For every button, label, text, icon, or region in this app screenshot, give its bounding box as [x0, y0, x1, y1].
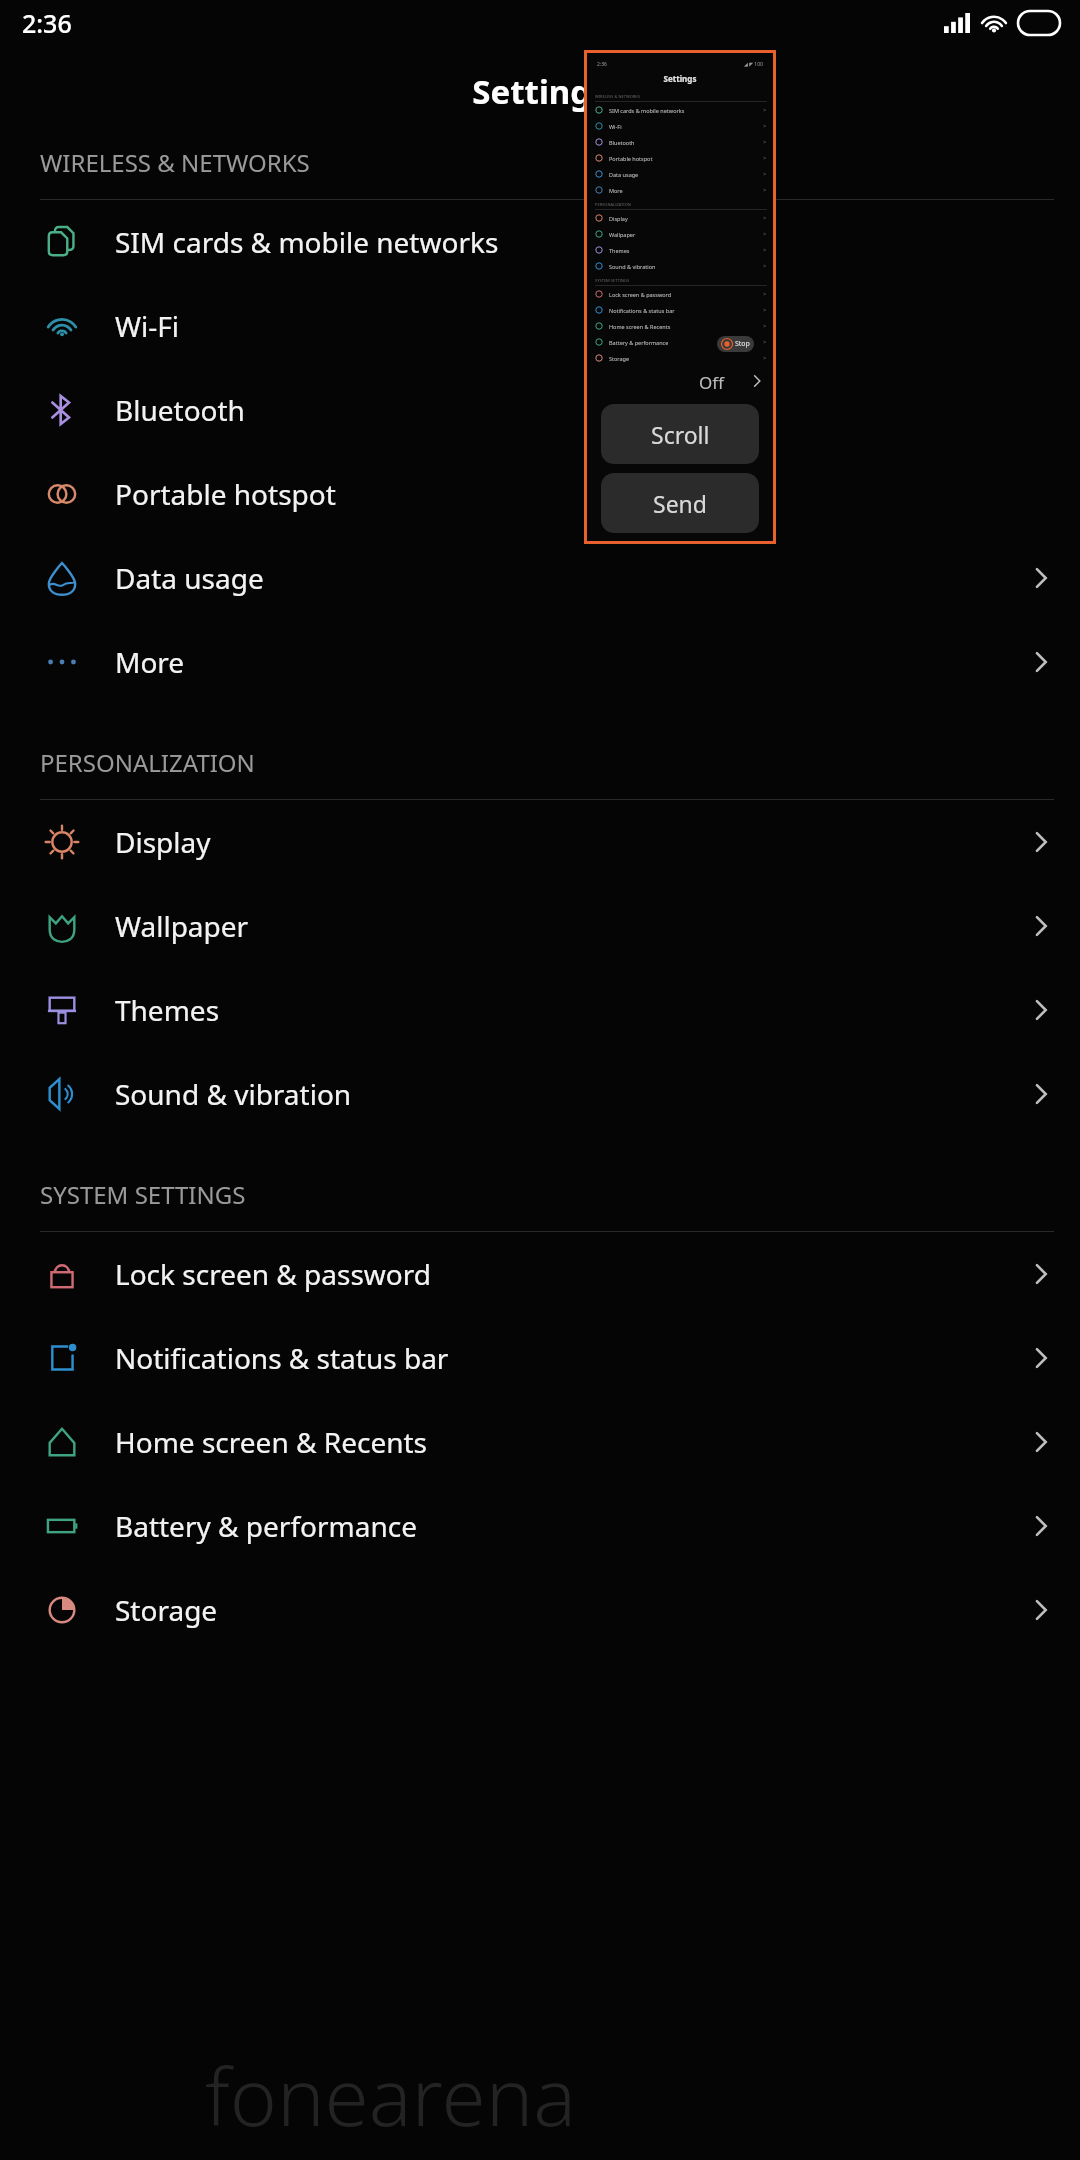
- button[interactable]: Themes: [587, 242, 773, 258]
- staticText: >: [763, 322, 767, 330]
- staticText: >: [763, 262, 767, 270]
- staticText: >: [763, 214, 767, 222]
- staticText: Themes: [115, 991, 220, 1029]
- staticText: Wi-Fi: [609, 123, 622, 130]
- button[interactable]: Battery & performance: [587, 334, 773, 350]
- staticText: Sound & vibration: [609, 263, 656, 270]
- staticText: Notifications & status bar: [115, 1339, 449, 1377]
- staticText: Display: [115, 823, 211, 861]
- staticText: Wallpaper: [115, 907, 249, 945]
- button[interactable]: Wallpaper: [0, 884, 1080, 968]
- button[interactable]: Sound & vibration: [587, 258, 773, 274]
- staticText: SYSTEM SETTINGS: [595, 278, 630, 283]
- button[interactable]: Storage: [587, 350, 773, 366]
- staticText: Wi-Fi: [115, 307, 180, 345]
- staticText: >: [763, 186, 767, 194]
- button[interactable]: More: [587, 182, 773, 198]
- staticText: Display: [609, 215, 628, 222]
- button[interactable]: Home screen & Recents: [0, 1400, 1080, 1484]
- button[interactable]: Storage: [0, 1568, 1080, 1652]
- staticText: >: [763, 246, 767, 254]
- staticText: PERSONALIZATION: [595, 202, 631, 207]
- staticText: Battery & performance: [115, 1507, 417, 1545]
- staticText: fonearena: [205, 2040, 577, 2149]
- button[interactable]: Sound & vibration: [0, 1052, 1080, 1136]
- button[interactable]: Wi-Fi: [0, 284, 1080, 368]
- button[interactable]: Portable hotspot: [0, 452, 1080, 536]
- button[interactable]: Notifications & status bar: [0, 1316, 1080, 1400]
- staticText: >: [763, 338, 767, 346]
- button[interactable]: More: [0, 620, 1080, 704]
- button[interactable]: Display: [0, 800, 1080, 884]
- button[interactable]: Scroll: [601, 404, 759, 464]
- staticText: >: [763, 230, 767, 238]
- staticText: Settings: [587, 73, 773, 84]
- button[interactable]: Data usage: [0, 536, 1080, 620]
- staticText: Storage: [609, 355, 630, 362]
- staticText: Storage: [115, 1591, 218, 1629]
- button[interactable]: Data usage: [587, 166, 773, 182]
- staticText: Notifications & status bar: [609, 307, 675, 314]
- staticText: Lock screen & password: [609, 291, 672, 298]
- button[interactable]: Lock screen & password: [587, 286, 773, 302]
- staticText: Sound & vibration: [115, 1075, 352, 1113]
- button[interactable]: Display: [587, 210, 773, 226]
- staticText: Home screen & Recents: [115, 1423, 428, 1461]
- button[interactable]: Portable hotspot: [587, 150, 773, 166]
- staticText: Off: [699, 371, 724, 394]
- staticText: More: [609, 187, 623, 194]
- staticText: >: [763, 138, 767, 146]
- staticText: >: [763, 170, 767, 178]
- button[interactable]: Wallpaper: [587, 226, 773, 242]
- button[interactable]: Notifications & status bar: [587, 302, 773, 318]
- staticText: SIM cards & mobile networks: [609, 107, 685, 114]
- staticText: Home screen & Recents: [609, 323, 671, 330]
- staticText: Stop: [735, 339, 750, 349]
- staticText: Lock screen & password: [115, 1255, 432, 1293]
- staticText: Bluetooth: [609, 139, 635, 146]
- button[interactable]: SIM cards & mobile networks: [587, 102, 773, 118]
- staticText: Data usage: [115, 559, 264, 597]
- staticText: Bluetooth: [115, 391, 245, 429]
- button[interactable]: SIM cards & mobile networks: [0, 200, 1080, 284]
- button[interactable]: Battery & performance: [0, 1484, 1080, 1568]
- staticText: More: [115, 643, 185, 681]
- staticText: Scroll: [651, 419, 710, 450]
- staticText: SIM cards & mobile networks: [115, 223, 499, 261]
- staticText: WIRELESS & NETWORKS: [40, 146, 310, 179]
- staticText: Battery & performance: [609, 339, 669, 346]
- staticText: 2:36: [22, 6, 72, 40]
- staticText: Portable hotspot: [609, 155, 653, 162]
- staticText: WIRELESS & NETWORKS: [595, 94, 640, 99]
- staticText: Send: [653, 488, 707, 519]
- staticText: >: [763, 306, 767, 314]
- staticText: Themes: [609, 247, 630, 254]
- staticText: >: [763, 154, 767, 162]
- button[interactable]: Bluetooth: [0, 368, 1080, 452]
- staticText: Wallpaper: [609, 231, 636, 238]
- staticText: Settings: [472, 69, 608, 114]
- button[interactable]: Home screen & Recents: [587, 318, 773, 334]
- button[interactable]: Stop: [721, 338, 750, 350]
- button[interactable]: Wi-Fi: [587, 118, 773, 134]
- button[interactable]: Themes: [0, 968, 1080, 1052]
- button[interactable]: Bluetooth: [587, 134, 773, 150]
- staticText: >: [763, 354, 767, 362]
- staticText: ◢ ◤ 100: [744, 61, 763, 68]
- staticText: Portable hotspot: [115, 475, 336, 513]
- staticText: SYSTEM SETTINGS: [40, 1178, 246, 1211]
- staticText: PERSONALIZATION: [40, 746, 255, 779]
- staticText: 2:36: [597, 61, 607, 68]
- staticText: >: [763, 106, 767, 114]
- staticText: >: [763, 122, 767, 130]
- staticText: >: [763, 290, 767, 298]
- button[interactable]: Send: [601, 473, 759, 533]
- staticText: Data usage: [609, 171, 639, 178]
- button[interactable]: Lock screen & password: [0, 1232, 1080, 1316]
